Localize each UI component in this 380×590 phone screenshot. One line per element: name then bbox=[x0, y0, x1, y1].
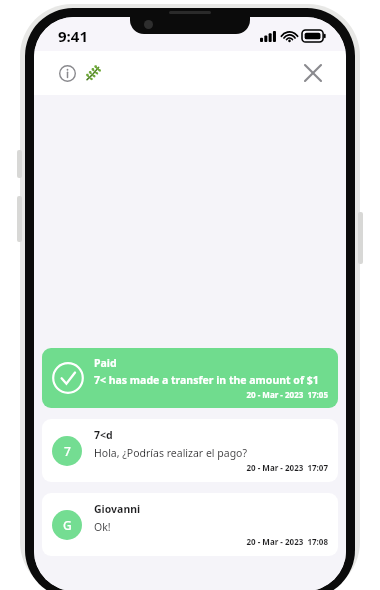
staticText: 7< has made a transfer in the amount of … bbox=[94, 373, 319, 387]
staticText: 20 - Mar - 2023 17:07 bbox=[94, 462, 328, 473]
staticText: Ok! bbox=[94, 520, 111, 534]
button[interactable]: Close bbox=[296, 56, 330, 90]
button[interactable]: G bbox=[42, 493, 338, 556]
staticText: Giovanni bbox=[94, 502, 141, 516]
staticText: 7 bbox=[64, 443, 71, 459]
staticText: 20 - Mar - 2023 17:08 bbox=[94, 536, 328, 547]
button[interactable]: Paid bbox=[42, 348, 338, 408]
button[interactable]: App logo bbox=[80, 61, 104, 85]
button[interactable]: Information bbox=[54, 60, 80, 86]
staticText: 20 - Mar - 2023 17:05 bbox=[94, 389, 328, 400]
button[interactable]: 7 bbox=[42, 419, 338, 482]
staticText: 7<d bbox=[94, 428, 113, 442]
staticText: Paid bbox=[94, 356, 117, 370]
staticText: 9:41 bbox=[58, 26, 88, 46]
staticText: G bbox=[63, 517, 72, 533]
staticText: Hola, ¿Podrías realizar el pago? bbox=[94, 446, 248, 460]
